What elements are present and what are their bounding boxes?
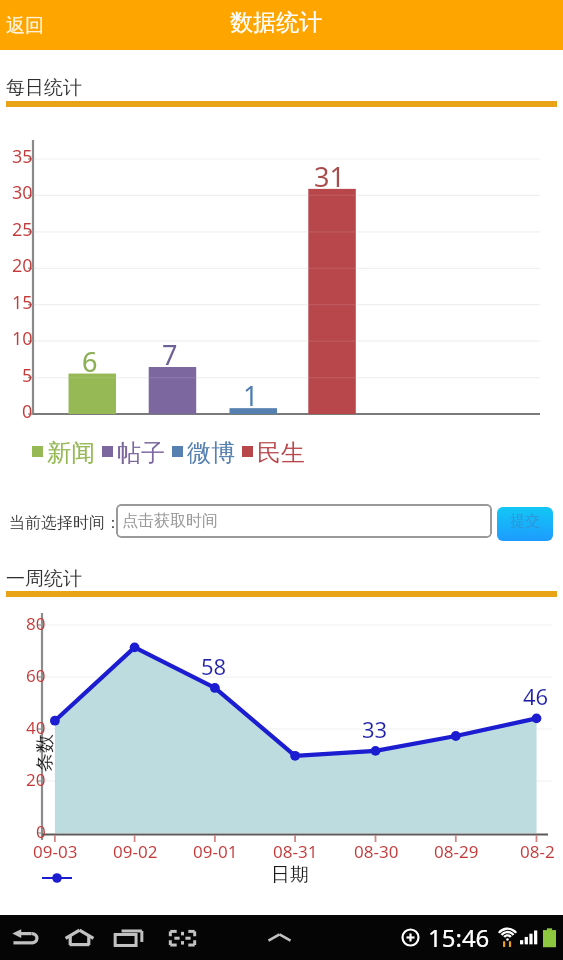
button[interactable]: Recents <box>106 915 150 960</box>
staticText: 返回 <box>6 14 44 38</box>
staticText: 15:46 <box>428 921 490 954</box>
staticText: 点击获取时间 <box>122 511 218 531</box>
staticText: 数据统计 <box>230 8 322 37</box>
button[interactable]: Back <box>4 915 48 960</box>
button[interactable]: 帖子 <box>102 438 172 464</box>
staticText: 09-03 <box>33 840 78 862</box>
staticText: 60 <box>26 664 46 687</box>
button[interactable]: Screenshot <box>160 915 204 960</box>
staticText: 每日统计 <box>6 76 82 100</box>
staticText: 提交 <box>510 512 540 531</box>
button[interactable]: 提交 <box>497 507 553 541</box>
staticText: 46 <box>523 681 549 709</box>
staticText: 80 <box>26 612 46 635</box>
staticText: 15 <box>12 290 33 315</box>
staticText: 25 <box>12 217 33 242</box>
button[interactable]: Expand status bar <box>257 915 301 960</box>
button[interactable]: 返回 <box>0 5 58 45</box>
staticText: 09-02 <box>113 840 158 862</box>
button[interactable]: 微博 <box>172 438 242 464</box>
staticText: 一周统计 <box>6 567 82 591</box>
staticText: 08-31 <box>273 840 318 862</box>
staticText: 20 <box>26 768 46 791</box>
staticText: 58 <box>201 651 227 679</box>
staticText: 08-2 <box>520 840 555 862</box>
staticText: 09-01 <box>193 840 238 862</box>
staticText: 33 <box>362 714 388 742</box>
staticText: 6 <box>82 343 98 373</box>
button[interactable]: 新闻 <box>32 438 102 464</box>
staticText: 条数 <box>33 734 57 772</box>
staticText: 20 <box>12 253 33 278</box>
staticText: 08-29 <box>434 840 479 862</box>
staticText: 微博 <box>187 438 235 464</box>
staticText: 当前选择时间： <box>9 513 121 533</box>
staticText: 5 <box>22 363 33 388</box>
staticText: 7 <box>162 336 178 366</box>
staticText: 30 <box>12 180 33 205</box>
staticText: 1 <box>243 377 259 407</box>
staticText: 0 <box>36 820 46 843</box>
staticText: 10 <box>12 326 33 351</box>
button[interactable]: Home <box>57 915 101 960</box>
staticText: 08-30 <box>354 840 399 862</box>
staticText: 35 <box>12 144 33 169</box>
staticText: 40 <box>26 716 46 739</box>
staticText: 0 <box>22 399 33 424</box>
staticText: 31 <box>314 158 345 188</box>
button[interactable]: 点击获取时间 <box>116 504 492 538</box>
button[interactable]: 民生 <box>242 438 312 464</box>
staticText: 民生 <box>257 438 305 464</box>
staticText: 帖子 <box>117 438 165 464</box>
staticText: 新闻 <box>47 438 95 464</box>
staticText: 日期 <box>271 863 309 887</box>
